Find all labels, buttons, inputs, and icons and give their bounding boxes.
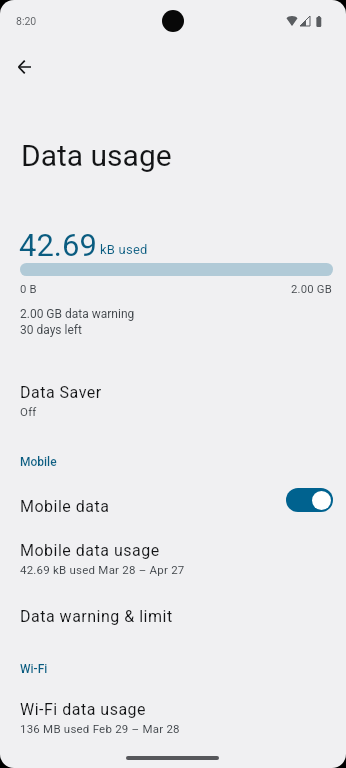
button[interactable]: Back (6, 49, 42, 85)
button[interactable]: Mobile data usage (0, 530, 346, 584)
staticText: 2.00 GB data warning (20, 307, 135, 321)
staticText: 42.69 (19, 227, 97, 263)
staticText: 0 B (20, 283, 37, 296)
staticText: Data Saver (20, 383, 102, 402)
staticText: 8:20 (16, 15, 37, 27)
staticText: Wi‑Fi data usage (20, 700, 147, 719)
staticText: 2.00 GB (232, 283, 332, 296)
staticText: 136 MB used Feb 29 – Mar 28 (20, 722, 180, 735)
staticText: Data usage (21, 138, 172, 173)
button[interactable]: Mobile data (0, 483, 346, 507)
staticText: kB used (100, 242, 148, 257)
staticText: Mobile data usage (20, 541, 160, 560)
button[interactable]: Data Saver (0, 372, 346, 426)
staticText: Mobile (20, 455, 57, 469)
staticText: Wi‑Fi (20, 662, 48, 676)
staticText: Off (20, 405, 37, 418)
staticText: Mobile data (20, 497, 110, 516)
staticText: Data warning & limit (20, 607, 173, 626)
staticText: 42.69 kB used Mar 28 – Apr 27 (20, 563, 185, 576)
button[interactable]: Data warning & limit (0, 596, 346, 637)
staticText: 30 days left (20, 323, 82, 337)
button[interactable]: Wi‑Fi data usage (0, 689, 346, 743)
